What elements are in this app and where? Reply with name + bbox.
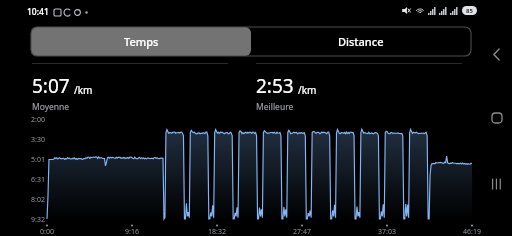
staticText: 2:00 xyxy=(24,115,45,125)
staticText: Distance xyxy=(338,34,384,49)
staticText: 10:41 xyxy=(27,6,49,18)
staticText: 27:47 xyxy=(286,227,318,236)
staticText: 85 xyxy=(466,7,473,15)
button[interactable]: Recent apps xyxy=(481,169,512,199)
button[interactable]: Distance xyxy=(251,27,471,56)
staticText: Temps xyxy=(124,34,159,49)
staticText: /km xyxy=(298,83,317,97)
staticText: 3:30 xyxy=(24,135,45,145)
staticText: 37:03 xyxy=(371,227,403,236)
staticText: Moyenne xyxy=(32,101,70,113)
staticText: 9:16 xyxy=(116,227,148,236)
staticText: 18:32 xyxy=(201,227,233,236)
staticText: 2:53 xyxy=(256,73,294,99)
staticText: 46:19 xyxy=(456,227,488,236)
button[interactable]: 2:53 xyxy=(256,63,462,113)
button[interactable]: Back xyxy=(481,39,512,69)
staticText: /km xyxy=(74,83,93,97)
staticText: 5:07 xyxy=(32,73,70,99)
staticText: 9:32 xyxy=(24,215,45,225)
staticText: Meilleure xyxy=(256,101,294,113)
staticText: 0:00 xyxy=(31,227,63,236)
button[interactable]: Temps xyxy=(31,27,251,56)
button[interactable]: Home xyxy=(481,103,512,133)
staticText: 6:31 xyxy=(24,175,45,185)
button[interactable]: 5:07 xyxy=(32,63,228,113)
staticText: 8:02 xyxy=(24,195,45,205)
staticText: 5:01 xyxy=(24,155,45,165)
